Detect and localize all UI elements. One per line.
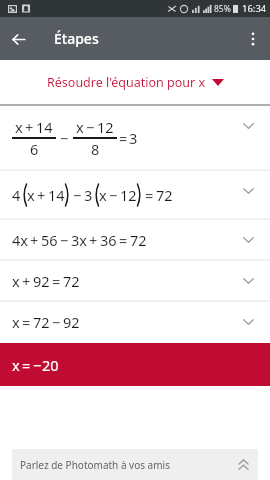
staticText: 14 (48, 185, 65, 205)
staticText: x (99, 185, 107, 205)
staticText: 72 (130, 230, 147, 250)
staticText: 4 (12, 185, 21, 205)
button[interactable]: x (0, 302, 270, 343)
staticText: Parlez de Photomath à vos amis (20, 458, 170, 472)
staticText: + (25, 117, 34, 137)
button[interactable]: Back (0, 21, 36, 57)
staticText: 36 (100, 230, 117, 250)
staticText: 12 (97, 117, 114, 137)
staticText: 3 (129, 128, 138, 148)
staticText: x (27, 185, 35, 205)
staticText: 14 (36, 117, 53, 137)
staticText: 20 (42, 355, 59, 375)
staticText: x (76, 117, 84, 137)
staticText: − (52, 312, 61, 332)
button[interactable]: x (0, 106, 270, 171)
staticText: 85% (214, 3, 231, 15)
staticText: − (60, 230, 69, 250)
button[interactable]: 4 (0, 171, 270, 220)
staticText: 16:34 (242, 2, 267, 15)
staticText: x (12, 355, 20, 375)
staticText: 3x (71, 230, 87, 250)
staticText: − (60, 128, 69, 148)
staticText: − (86, 117, 95, 137)
staticText: Résoudre l'équation pour x (47, 74, 206, 91)
button[interactable]: Parlez de Photomath à vos amis (12, 449, 258, 480)
staticText: + (37, 185, 46, 205)
staticText: − (109, 185, 118, 205)
staticText: + (89, 230, 98, 250)
staticText: 72 (156, 185, 173, 205)
button[interactable]: 4x (0, 220, 270, 261)
staticText: = (22, 355, 31, 375)
staticText: x (12, 271, 20, 291)
button[interactable]: x (0, 343, 270, 386)
staticText: = (145, 185, 154, 205)
staticText: x (15, 117, 23, 137)
staticText: 12 (120, 185, 137, 205)
staticText: 6 (30, 139, 39, 159)
staticText: 92 (63, 312, 80, 332)
staticText: + (30, 230, 39, 250)
staticText: = (22, 312, 31, 332)
staticText: 8 (91, 139, 100, 159)
staticText: − (33, 355, 42, 375)
button[interactable]: Résoudre l'équation pour x (0, 60, 270, 104)
staticText: = (119, 128, 128, 148)
staticText: Étapes (54, 29, 99, 48)
staticText: x (12, 312, 20, 332)
button[interactable]: More options (236, 22, 270, 56)
staticText: 92 (33, 271, 50, 291)
staticText: 56 (41, 230, 58, 250)
staticText: + (22, 271, 31, 291)
staticText: = (52, 271, 61, 291)
staticText: 4x (12, 230, 28, 250)
staticText: 72 (63, 271, 80, 291)
staticText: = (119, 230, 128, 250)
staticText: 72 (33, 312, 50, 332)
staticText: − (73, 185, 82, 205)
staticText: 3 (84, 185, 93, 205)
button[interactable]: x (0, 261, 270, 302)
